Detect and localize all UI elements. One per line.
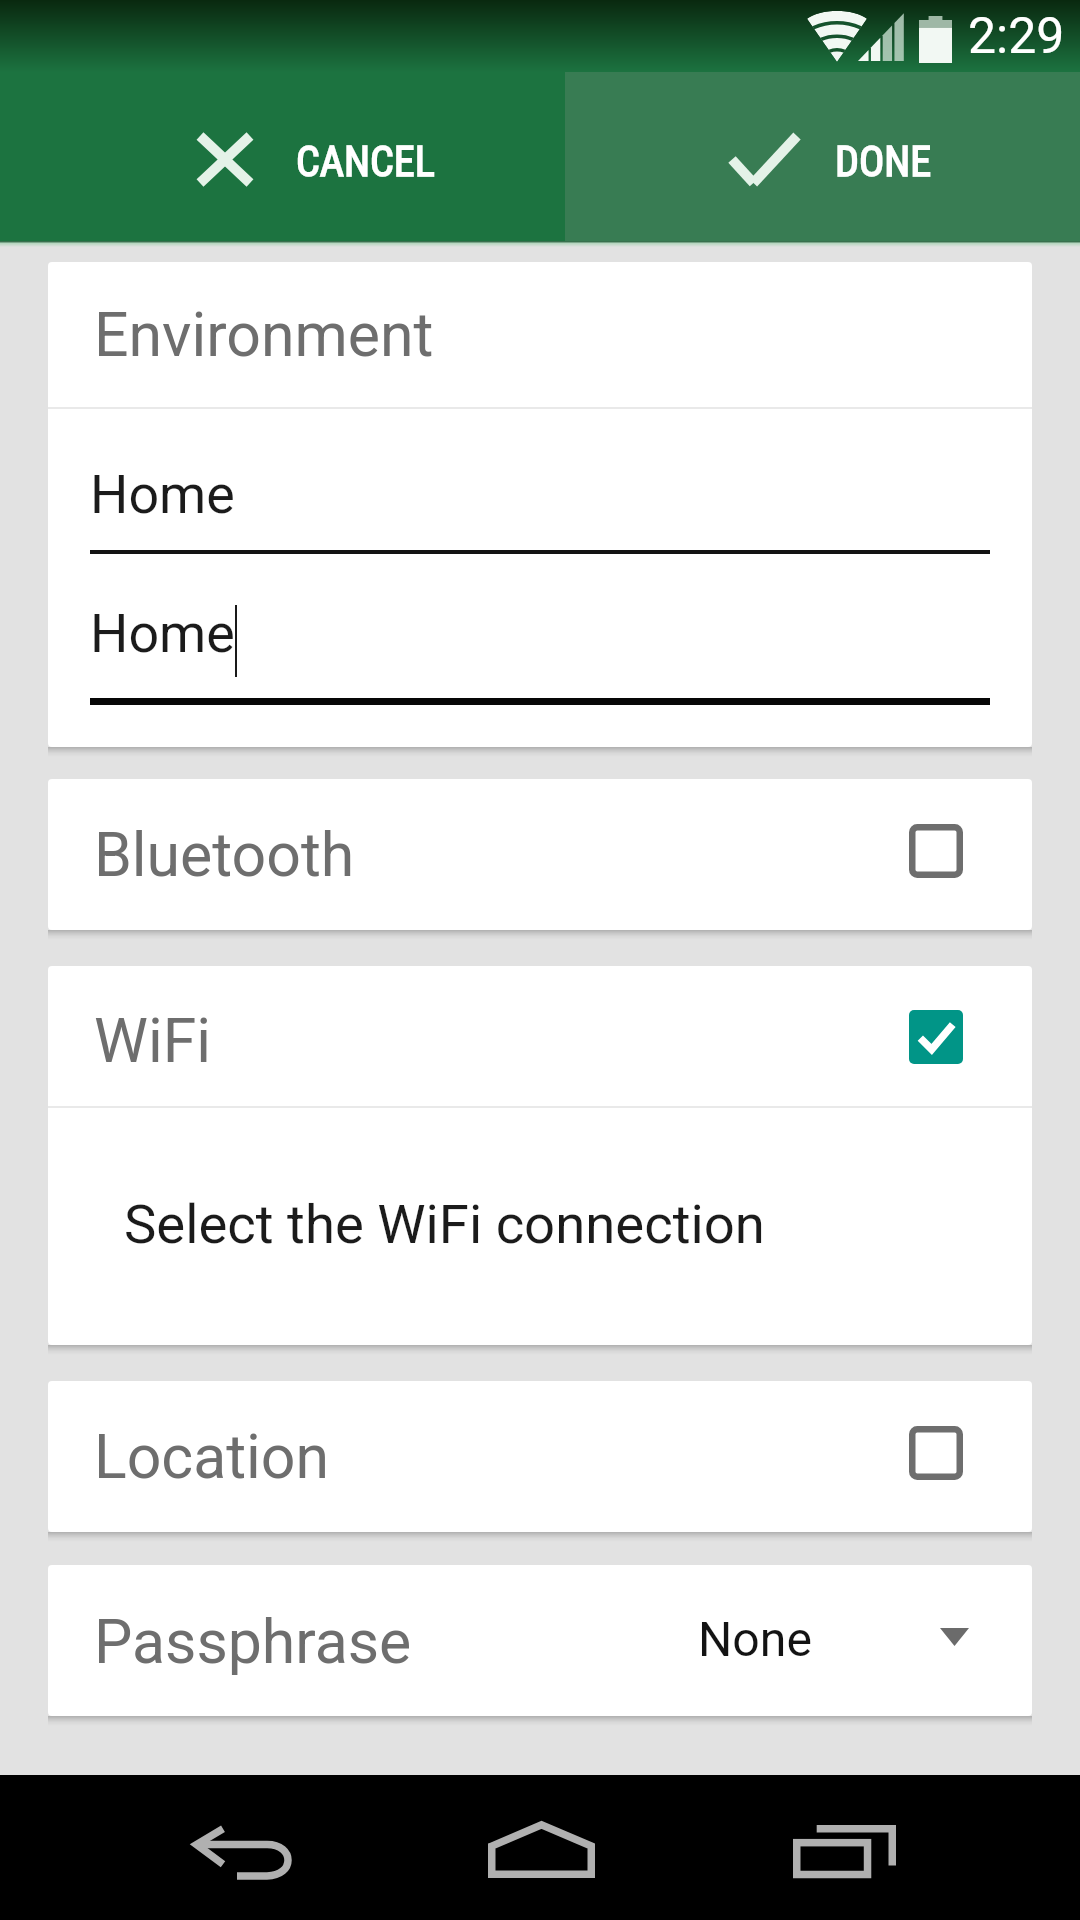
staticText: DONE bbox=[835, 137, 932, 186]
staticText: Home bbox=[90, 602, 235, 665]
other: Toggle bbox=[909, 1426, 963, 1480]
button[interactable]: Recents bbox=[733, 1775, 953, 1920]
button[interactable]: DONE bbox=[565, 72, 1080, 241]
button[interactable]: Home bbox=[430, 1775, 650, 1920]
button[interactable]: Location bbox=[48, 1381, 1032, 1532]
staticText: None bbox=[698, 1611, 812, 1667]
button[interactable]: Home bbox=[90, 442, 990, 554]
staticText: 2:29 bbox=[968, 7, 1065, 66]
button[interactable]: WiFi bbox=[48, 966, 1032, 1106]
other: Toggle bbox=[909, 1010, 963, 1064]
staticText: Location bbox=[94, 1422, 330, 1493]
staticText: CANCEL bbox=[296, 137, 435, 186]
button[interactable]: Passphrase bbox=[48, 1565, 1032, 1716]
staticText: Select the WiFi connection bbox=[124, 1192, 765, 1256]
button[interactable]: Home bbox=[90, 582, 990, 705]
other: Toggle bbox=[909, 824, 963, 878]
staticText: WiFi bbox=[94, 1006, 212, 1077]
button[interactable]: Bluetooth bbox=[48, 779, 1032, 930]
button[interactable]: CANCEL bbox=[0, 72, 565, 241]
staticText: Passphrase bbox=[94, 1607, 412, 1678]
staticText: Bluetooth bbox=[94, 820, 355, 891]
button[interactable]: Select the WiFi connection bbox=[48, 1108, 1032, 1345]
button[interactable]: Back bbox=[130, 1775, 350, 1920]
staticText: Environment bbox=[94, 300, 434, 371]
staticText: Home bbox=[90, 463, 235, 526]
